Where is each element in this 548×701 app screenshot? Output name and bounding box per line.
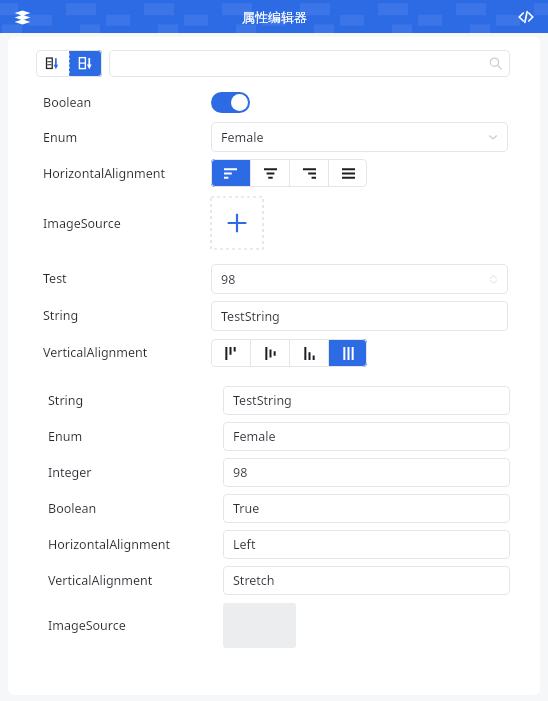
- button[interactable]: Source code: [513, 4, 539, 30]
- staticText: HorizontalAlignment: [43, 165, 165, 182]
- staticText: TestString: [221, 308, 280, 325]
- button[interactable]: Alignment option 1: [211, 339, 250, 367]
- staticText: Enum: [43, 129, 78, 146]
- button[interactable]: Layers: [9, 4, 35, 30]
- staticText: ImageSource: [43, 215, 121, 232]
- staticText: HorizontalAlignment: [48, 536, 170, 553]
- staticText: Female: [221, 129, 264, 146]
- staticText: 98: [233, 464, 248, 481]
- staticText: ImageSource: [48, 617, 126, 634]
- button[interactable]: Stretch: [223, 566, 510, 595]
- button[interactable]: Alignment option 2: [251, 339, 289, 367]
- staticText: Boolean: [43, 94, 92, 111]
- button[interactable]: Add image source: [211, 197, 263, 249]
- button[interactable]: [109, 50, 510, 77]
- staticText: Test: [43, 270, 67, 287]
- button[interactable]: Alignment option 2: [251, 159, 289, 187]
- button[interactable]: Alignment option 4: [329, 159, 367, 187]
- staticText: Integer: [48, 464, 92, 481]
- staticText: 属性编辑器: [242, 9, 307, 25]
- button[interactable]: Alignment option 4: [329, 339, 367, 367]
- button[interactable]: Sort by definition order: [36, 50, 69, 77]
- staticText: String: [48, 392, 84, 409]
- button[interactable]: Alignment option 1: [211, 159, 250, 187]
- button[interactable]: TestString: [211, 301, 508, 331]
- button[interactable]: Female: [223, 422, 510, 451]
- staticText: VerticalAlignment: [48, 572, 153, 589]
- staticText: VerticalAlignment: [43, 344, 148, 361]
- staticText: Left: [233, 536, 256, 553]
- button[interactable]: Sort alphabetically: [69, 50, 102, 77]
- button[interactable]: 98: [223, 458, 510, 487]
- staticText: Boolean: [48, 500, 97, 517]
- button[interactable]: Boolean toggle, on: [211, 92, 250, 113]
- staticText: Enum: [48, 428, 83, 445]
- staticText: TestString: [233, 392, 292, 409]
- staticText: 98: [221, 271, 236, 288]
- staticText: Female: [233, 428, 276, 445]
- button[interactable]: Alignment option 3: [290, 159, 328, 187]
- button[interactable]: Left: [223, 530, 510, 559]
- staticText: String: [43, 307, 79, 324]
- button[interactable]: TestString: [223, 386, 510, 415]
- staticText: Stretch: [233, 572, 275, 589]
- button[interactable]: 98: [211, 264, 508, 294]
- staticText: True: [233, 500, 260, 517]
- button[interactable]: True: [223, 494, 510, 523]
- button[interactable]: Female: [211, 122, 508, 152]
- button[interactable]: Alignment option 3: [290, 339, 328, 367]
